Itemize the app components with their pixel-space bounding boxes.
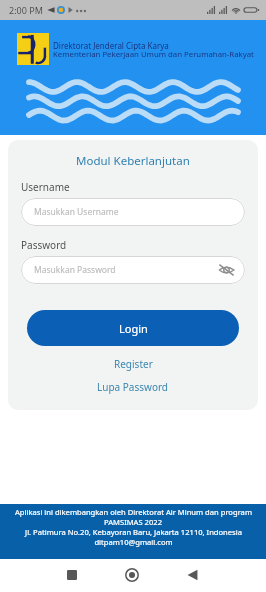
button[interactable]: Masukkan Username: [21, 198, 245, 226]
button[interactable]: Register: [108, 353, 159, 375]
staticText: Kementerian Pekerjaan Umum dan Perumahan…: [53, 49, 254, 60]
staticText: ditpam10@gmail.com: [94, 537, 173, 547]
staticText: Direktorat Jenderal Cipta Karya: [53, 40, 169, 51]
other: Show password: [218, 263, 235, 277]
staticText: Register: [114, 357, 153, 371]
staticText: Lupa Password: [97, 380, 169, 394]
button[interactable]: Masukkan Password: [21, 256, 245, 284]
button[interactable]: Recents: [52, 559, 92, 592]
staticText: Modul Keberlanjutan: [76, 153, 190, 169]
button[interactable]: Back: [172, 559, 212, 592]
staticText: Username: [21, 180, 70, 194]
button[interactable]: Home: [112, 559, 152, 592]
staticText: 2:00 PM: [9, 4, 43, 16]
staticText: PAMSIMAS 2022: [104, 517, 162, 527]
staticText: Masukkan Password: [34, 264, 116, 276]
staticText: Jl. Patimura No.20, Kebayoran Baru, Jaka…: [25, 527, 242, 537]
staticText: Masukkan Username: [34, 206, 119, 218]
staticText: Aplikasi ini dikembangkan oleh Direktora…: [15, 507, 252, 517]
staticText: Login: [119, 321, 148, 336]
button[interactable]: Lupa Password: [91, 376, 175, 398]
staticText: Password: [21, 238, 67, 252]
button[interactable]: Login: [27, 310, 239, 346]
